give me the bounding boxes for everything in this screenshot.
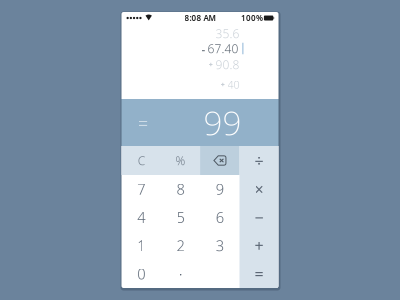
button[interactable]: 9 <box>121 146 161 174</box>
button[interactable]: Delete <box>121 146 161 175</box>
staticText: 7 <box>137 179 145 199</box>
staticText: 6 <box>216 208 224 227</box>
staticText: × <box>254 178 263 200</box>
button[interactable]: = <box>121 99 278 146</box>
button[interactable] <box>121 146 161 174</box>
button[interactable]: 2 <box>121 146 161 174</box>
button[interactable]: 1 <box>121 146 161 174</box>
staticText: 1 <box>137 236 145 255</box>
staticText: 67.40 <box>208 40 239 56</box>
button[interactable]: − <box>121 146 160 174</box>
staticText: − <box>254 207 263 228</box>
button[interactable]: + <box>121 146 160 174</box>
button[interactable]: 4 <box>121 146 161 174</box>
button[interactable]: · <box>121 146 161 174</box>
button[interactable]: 3 <box>121 146 161 174</box>
button[interactable]: 7 <box>121 146 161 174</box>
staticText: 100% <box>241 13 263 23</box>
staticText: = <box>254 263 263 284</box>
staticText: 9 <box>216 179 224 199</box>
button[interactable]: ÷ <box>121 146 160 175</box>
staticText: 8 <box>176 179 184 199</box>
staticText: 90.8 <box>215 56 239 72</box>
staticText: · <box>178 262 182 285</box>
staticText: 5 <box>176 208 184 227</box>
button[interactable]: × <box>121 146 160 174</box>
button[interactable]: = <box>121 146 160 174</box>
staticText: + <box>254 235 263 256</box>
button[interactable]: 6 <box>121 146 161 174</box>
button[interactable]: % <box>121 146 161 175</box>
staticText: 2 <box>176 236 184 255</box>
staticText: C <box>138 152 145 168</box>
staticText: ÷ <box>254 150 263 171</box>
staticText: 3 <box>216 236 224 255</box>
button[interactable]: 0 <box>121 146 161 174</box>
staticText: 0 <box>137 264 145 284</box>
button[interactable]: 8 <box>121 146 161 174</box>
staticText: 4 <box>137 208 145 227</box>
staticText: 99 <box>203 100 241 145</box>
staticText: 35.6 <box>215 25 239 41</box>
staticText: % <box>175 152 185 168</box>
staticText: 40 <box>227 77 239 92</box>
button[interactable]: C <box>121 146 161 175</box>
staticText: 8:08 AM <box>184 13 215 23</box>
button[interactable]: 5 <box>121 146 161 174</box>
staticText: = <box>137 110 148 135</box>
